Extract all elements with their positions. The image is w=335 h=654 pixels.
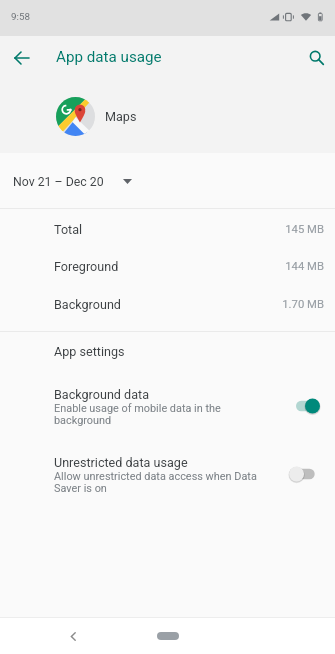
staticText: 9:58 bbox=[11, 11, 30, 22]
button[interactable]: Background data bbox=[0, 387, 335, 447]
button[interactable]: Total bbox=[0, 211, 335, 248]
button[interactable]: Navigate up bbox=[2, 38, 42, 78]
button[interactable]: Background data on bbox=[288, 395, 322, 417]
button[interactable]: Search bbox=[295, 38, 335, 78]
button[interactable]: Unrestricted data usage off bbox=[288, 463, 322, 485]
staticText: Enable usage of mobile data in the backg… bbox=[54, 402, 266, 427]
staticText: 144 MB bbox=[285, 260, 324, 273]
staticText: Maps bbox=[105, 109, 137, 124]
button[interactable]: Nov 21 – Dec 20 bbox=[0, 160, 335, 206]
button[interactable]: Back bbox=[58, 622, 86, 650]
button[interactable]: Unrestricted data usage bbox=[0, 455, 335, 515]
staticText: Background bbox=[54, 297, 121, 312]
button[interactable]: Background bbox=[0, 286, 335, 323]
staticText: Nov 21 – Dec 20 bbox=[13, 175, 104, 189]
staticText: Background data bbox=[54, 387, 149, 402]
staticText: Allow unrestricted data access when Data… bbox=[54, 470, 266, 495]
button[interactable]: Maps bbox=[0, 90, 335, 142]
staticText: 1.70 MB bbox=[282, 298, 324, 311]
staticText: Unrestricted data usage bbox=[54, 455, 188, 470]
staticText: Total bbox=[54, 222, 83, 237]
staticText: App settings bbox=[54, 344, 125, 359]
staticText: 145 MB bbox=[285, 223, 324, 236]
staticText: App data usage bbox=[56, 48, 162, 66]
staticText: Foreground bbox=[54, 259, 119, 274]
button[interactable]: Home bbox=[157, 632, 179, 640]
button[interactable]: Foreground bbox=[0, 248, 335, 285]
